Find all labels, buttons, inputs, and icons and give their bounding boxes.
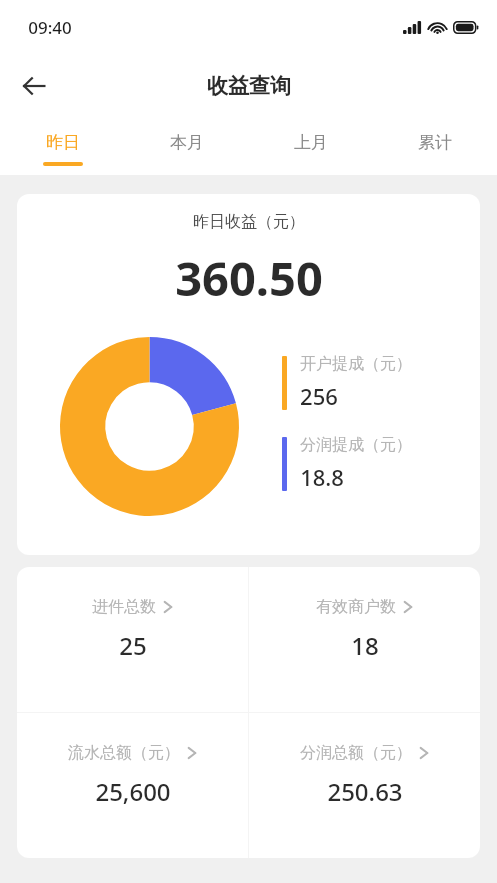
button[interactable]: 分润总额（元） xyxy=(249,713,480,858)
staticText: 256 xyxy=(300,381,338,411)
button[interactable]: 本月 xyxy=(125,117,249,175)
staticText: 09:40 xyxy=(28,16,72,39)
staticText: 本月 xyxy=(170,132,204,153)
staticText: 流水总额（元） xyxy=(68,743,180,763)
staticText: 250.63 xyxy=(327,775,403,808)
button[interactable]: 进件总数 xyxy=(17,567,248,712)
staticText: 收益查询 xyxy=(207,73,291,99)
staticText: 18.8 xyxy=(300,462,344,492)
staticText: 进件总数 xyxy=(92,597,156,617)
staticText: 25,600 xyxy=(95,775,171,808)
button[interactable]: 昨日 xyxy=(0,117,125,175)
staticText: 昨日收益（元） xyxy=(193,212,305,232)
staticText: 25 xyxy=(119,629,147,662)
staticText: 昨日 xyxy=(46,132,80,153)
staticText: 有效商户数 xyxy=(316,597,396,617)
staticText: 累计 xyxy=(418,132,452,153)
staticText: 开户提成（元） xyxy=(300,354,412,374)
staticText: 360.50 xyxy=(175,246,323,310)
button[interactable]: 累计 xyxy=(373,117,497,175)
button[interactable]: 流水总额（元） xyxy=(17,713,248,858)
button[interactable]: Back xyxy=(10,62,58,110)
staticText: 上月 xyxy=(294,132,328,153)
button[interactable]: 上月 xyxy=(249,117,373,175)
button[interactable]: 有效商户数 xyxy=(249,567,480,712)
staticText: 分润总额（元） xyxy=(300,743,412,763)
staticText: 分润提成（元） xyxy=(300,435,412,455)
staticText: 18 xyxy=(351,629,379,662)
